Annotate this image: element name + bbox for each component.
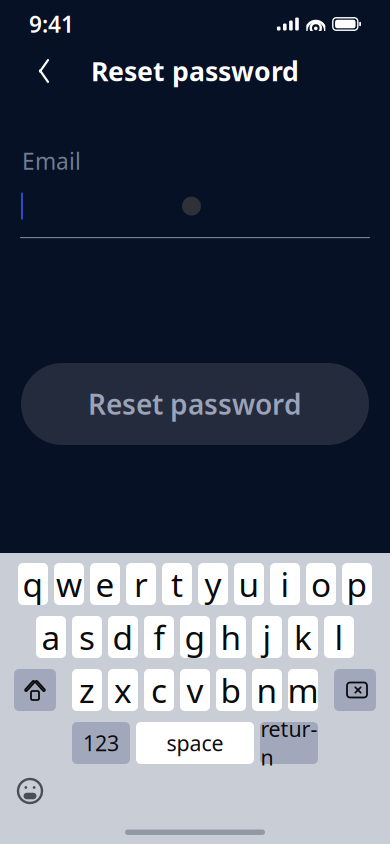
button[interactable]: b [216, 669, 246, 711]
button[interactable]: e [90, 563, 120, 605]
button[interactable]: return [260, 722, 318, 764]
staticText: Reset password [88, 385, 302, 423]
button[interactable]: t [162, 563, 192, 605]
staticText: Reset password [91, 53, 299, 89]
button[interactable]: d [108, 616, 138, 658]
button[interactable]: Shift [14, 669, 56, 711]
button[interactable]: space [136, 722, 254, 764]
staticText: b [220, 668, 241, 712]
staticText: i [280, 562, 289, 606]
staticText: w [56, 562, 82, 606]
staticText: 9:41 [29, 9, 74, 39]
staticText: p [346, 562, 367, 606]
button[interactable]: j [252, 616, 282, 658]
staticText: z [79, 668, 95, 712]
staticText: u [238, 562, 259, 606]
button[interactable]: 123 [72, 722, 130, 764]
staticText: return [260, 715, 317, 771]
button[interactable]: g [180, 616, 210, 658]
staticText: n [256, 668, 277, 712]
button[interactable]: m [288, 669, 318, 711]
staticText: space [166, 729, 223, 757]
button[interactable]: a [36, 616, 66, 658]
button[interactable]: n [252, 669, 282, 711]
staticText: e [95, 562, 114, 606]
button[interactable]: z [72, 669, 102, 711]
staticText: q [22, 562, 43, 606]
staticText: 123 [83, 729, 119, 757]
button[interactable]: u [234, 563, 264, 605]
staticText: c [151, 668, 167, 712]
button[interactable]: k [288, 616, 318, 658]
button[interactable]: q [18, 563, 48, 605]
button[interactable]: p [342, 563, 372, 605]
staticText: h [220, 615, 241, 659]
staticText: r [134, 562, 148, 606]
button[interactable]: i [270, 563, 300, 605]
staticText: t [171, 562, 183, 606]
staticText: y [204, 562, 221, 606]
button[interactable]: x [108, 669, 138, 711]
button[interactable]: Emoji [8, 774, 52, 808]
staticText: l [334, 615, 343, 659]
button[interactable]: v [180, 669, 210, 711]
button[interactable]: s [72, 616, 102, 658]
staticText: x [114, 668, 132, 712]
staticText: o [311, 562, 331, 606]
staticText: v [186, 668, 203, 712]
button[interactable]: h [216, 616, 246, 658]
button[interactable]: f [144, 616, 174, 658]
button[interactable]: w [54, 563, 84, 605]
button[interactable]: y [198, 563, 228, 605]
staticText: Email [22, 146, 81, 176]
staticText: a [41, 615, 60, 659]
button[interactable]: r [126, 563, 156, 605]
button[interactable]: Delete [334, 669, 376, 711]
staticText: g [184, 615, 205, 659]
staticText: k [294, 615, 312, 659]
button[interactable]: Back [21, 48, 67, 94]
staticText: s [79, 615, 95, 659]
button[interactable]: c [144, 669, 174, 711]
staticText: f [153, 615, 164, 659]
staticText: j [262, 615, 271, 659]
staticText: m [287, 668, 318, 712]
staticText: d [112, 615, 133, 659]
button[interactable]: l [324, 616, 354, 658]
button[interactable]: Reset password [21, 363, 369, 445]
button[interactable]: o [306, 563, 336, 605]
